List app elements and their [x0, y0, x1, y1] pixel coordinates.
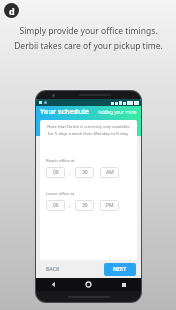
button[interactable]: 30 — [75, 200, 94, 211]
staticText: Reach office at — [46, 158, 75, 164]
button[interactable]: PM — [100, 200, 119, 211]
staticText: Adding your route — [98, 109, 137, 115]
staticText: d — [9, 5, 15, 17]
staticText: NEXT — [113, 266, 127, 273]
button[interactable]: 30 — [75, 167, 94, 178]
staticText: Your schedule — [40, 107, 89, 117]
button[interactable]: AM — [100, 167, 119, 178]
button[interactable]: NEXT — [104, 263, 136, 276]
staticText: Leave office at — [46, 191, 75, 197]
staticText: : — [69, 202, 71, 210]
staticText: AM — [106, 169, 114, 176]
button[interactable]: 06 — [46, 200, 65, 211]
staticText: BACK — [46, 266, 60, 273]
staticText: 30 — [82, 202, 88, 209]
staticText: : — [69, 169, 71, 177]
button[interactable]: BACK — [41, 264, 65, 275]
button[interactable]: Derbii logo — [4, 3, 19, 18]
staticText: PM — [106, 202, 114, 209]
button[interactable]: Home — [71, 278, 106, 291]
staticText: 30 — [82, 169, 88, 176]
button[interactable]: 09 — [46, 167, 65, 178]
staticText: Simply provide your office timings. — [19, 25, 158, 37]
staticText: Note that Derbii is currently only avail… — [46, 124, 131, 136]
button[interactable]: Back — [36, 278, 71, 291]
staticText: Derbii takes care of your pickup time. — [14, 40, 163, 52]
button[interactable]: Recent apps — [106, 278, 141, 291]
staticText: 09 — [53, 169, 59, 176]
staticText: 06 — [53, 202, 59, 209]
